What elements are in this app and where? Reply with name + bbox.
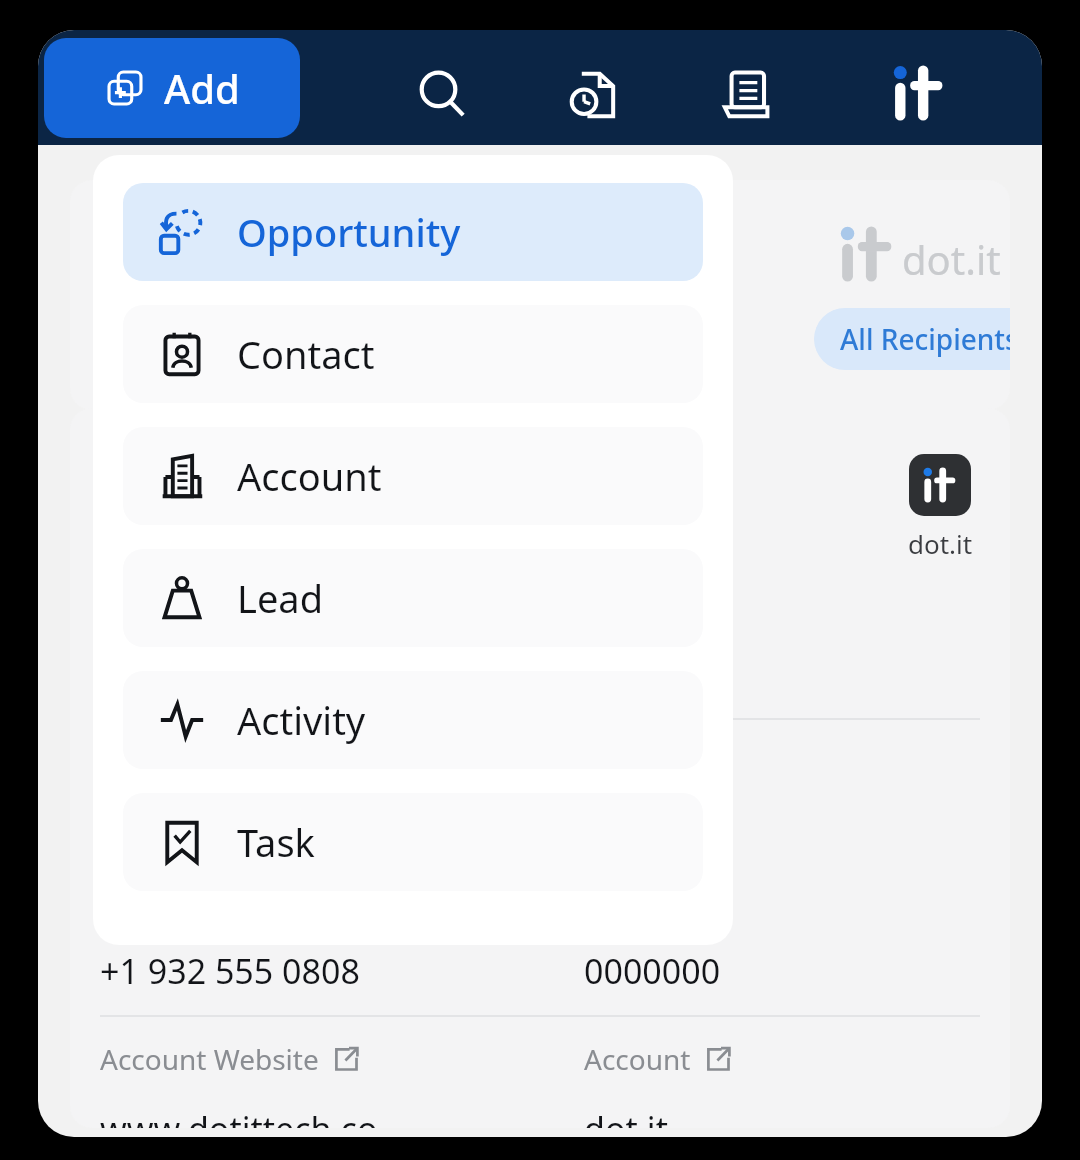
staticText: Add bbox=[164, 61, 240, 115]
staticText: Contact bbox=[237, 328, 375, 380]
button[interactable]: Activity bbox=[123, 671, 703, 769]
staticText: Task bbox=[237, 816, 315, 868]
staticText: Account Website bbox=[100, 1040, 319, 1078]
button[interactable]: Add bbox=[44, 38, 300, 138]
staticText: Opportunity bbox=[237, 206, 461, 258]
button[interactable]: Account bbox=[584, 1040, 733, 1078]
button[interactable]: Search bbox=[415, 67, 471, 123]
staticText: Account bbox=[237, 450, 382, 502]
button[interactable]: dot.it bbox=[886, 60, 952, 126]
button[interactable]: Opportunity bbox=[123, 183, 703, 281]
button[interactable]: Notes bbox=[717, 67, 773, 123]
button[interactable]: Account bbox=[123, 427, 703, 525]
staticText: dot.it bbox=[908, 526, 973, 561]
staticText: www.dotittech.co bbox=[100, 1106, 378, 1128]
staticText: Activity bbox=[237, 694, 366, 746]
button[interactable]: All Recipients bbox=[814, 308, 1010, 370]
button[interactable]: Account Website bbox=[100, 1040, 361, 1078]
staticText: +1 932 555 0808 bbox=[100, 948, 360, 994]
staticText: 0000000 bbox=[584, 948, 721, 994]
staticText: Account bbox=[584, 1040, 691, 1078]
button[interactable]: Contact bbox=[123, 305, 703, 403]
button[interactable]: Lead bbox=[123, 549, 703, 647]
staticText: dot.it bbox=[584, 1106, 668, 1128]
button[interactable]: Recent documents bbox=[565, 67, 621, 123]
staticText: All Recipients bbox=[840, 320, 1010, 358]
staticText: dot.it bbox=[902, 232, 1001, 286]
button[interactable]: Task bbox=[123, 793, 703, 891]
staticText: Lead bbox=[237, 572, 324, 624]
